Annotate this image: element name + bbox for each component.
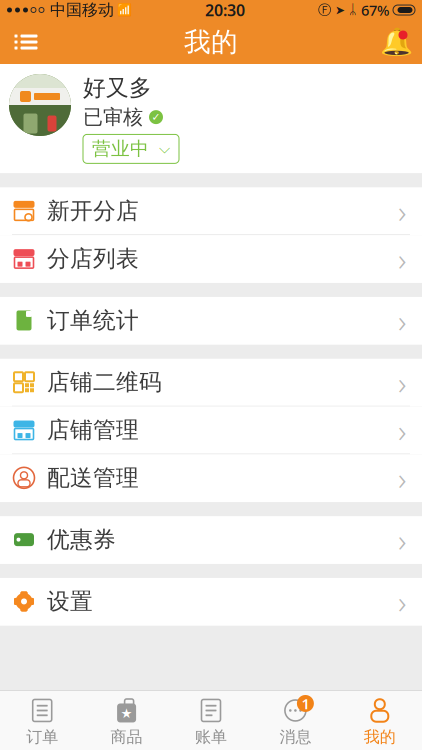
- button[interactable]: 1: [253, 691, 338, 750]
- button[interactable]: 账单: [169, 691, 253, 750]
- button[interactable]: 订单统计: [0, 297, 422, 345]
- button[interactable]: 店铺管理: [0, 406, 422, 454]
- button[interactable]: 订单: [0, 691, 84, 750]
- button[interactable]: 新开分店: [0, 187, 422, 235]
- staticText: 营业中: [92, 137, 149, 160]
- staticText: 新开分店: [47, 197, 139, 225]
- staticText: 分店列表: [47, 245, 139, 272]
- staticText: ›: [398, 518, 406, 561]
- staticText: 我的: [364, 727, 396, 747]
- staticText: 已审核: [83, 105, 143, 129]
- button[interactable]: 分店列表: [0, 235, 422, 283]
- staticText: ᛦ: [349, 3, 357, 16]
- staticText: 设置: [47, 587, 93, 615]
- staticText: 中国移动: [50, 0, 114, 20]
- staticText: 🔔: [379, 27, 412, 57]
- staticText: 账单: [195, 727, 227, 747]
- button[interactable]: 设置: [0, 578, 422, 626]
- staticText: 商品: [111, 727, 143, 747]
- staticText: ›: [398, 580, 406, 623]
- staticText: ›: [398, 190, 406, 232]
- staticText: 店铺二维码: [47, 368, 162, 396]
- button[interactable]: 我的: [338, 691, 422, 750]
- staticText: ✓: [151, 111, 160, 123]
- button[interactable]: ★: [84, 691, 169, 750]
- staticText: 我的: [184, 26, 238, 58]
- staticText: 订单统计: [47, 306, 139, 334]
- staticText: 订单: [26, 727, 58, 747]
- staticText: ›: [398, 409, 406, 451]
- staticText: 67%: [361, 0, 389, 20]
- staticText: 📶: [117, 3, 132, 17]
- staticText: 20:30: [205, 0, 245, 21]
- staticText: 优惠券: [47, 526, 116, 553]
- button[interactable]: 配送管理: [0, 454, 422, 502]
- staticText: 1: [301, 694, 309, 713]
- button[interactable]: Notifications: [370, 20, 422, 64]
- staticText: 消息: [279, 727, 311, 747]
- staticText: ›: [398, 299, 406, 342]
- staticText: ›: [398, 361, 406, 403]
- button[interactable]: 好又多: [0, 64, 422, 173]
- staticText: Ⓕ: [318, 2, 331, 18]
- staticText: 好又多: [83, 74, 152, 102]
- staticText: ➤: [335, 3, 345, 17]
- staticText: ⌵: [159, 142, 170, 156]
- staticText: ›: [398, 457, 406, 499]
- staticText: ★: [121, 706, 133, 721]
- staticText: 店铺管理: [47, 416, 139, 444]
- button[interactable]: Menu: [0, 20, 52, 64]
- staticText: 配送管理: [47, 464, 139, 492]
- button[interactable]: 优惠券: [0, 516, 422, 564]
- button[interactable]: 店铺二维码: [0, 359, 422, 406]
- staticText: ›: [398, 237, 406, 280]
